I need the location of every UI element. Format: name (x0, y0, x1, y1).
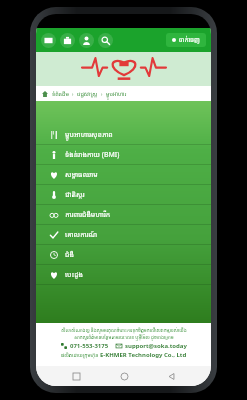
button[interactable]: Back (163, 368, 179, 384)
staticText: 071-553-3175 (70, 342, 109, 350)
button[interactable]: ទំងន់រាងកាយ (BMI) (36, 145, 211, 164)
staticText: គោលការណ៍ (65, 230, 98, 240)
staticText: សាកសួរព័ត៌មានបន្ថែមតាមរយៈលេខ ឬអ៊ីម៉ែល ដូ… (74, 334, 174, 340)
button[interactable]: សម្ពាធឈាម (36, 165, 211, 184)
staticText: ការពារជំងឺមហារីក (65, 210, 111, 220)
button[interactable]: ម្ហូបអាហារសុខភាព (36, 125, 211, 144)
staticText: › (69, 90, 77, 97)
staticText: សម្ពាធឈាម (65, 170, 98, 180)
staticText: ជំងឺ (65, 250, 74, 260)
staticText: E-KHMER Technology Co., Ltd (100, 351, 187, 359)
button[interactable]: Hospital (60, 33, 75, 48)
staticText: ទំងន់រាងកាយ (BMI) (65, 150, 120, 160)
staticText: បេះដូង (65, 270, 84, 280)
staticText: ម្ហូបអាហារសុខភាព (65, 130, 113, 140)
button[interactable]: ការពារជំងឺមហារីក (36, 205, 211, 224)
button[interactable]: ជាតិស្ករ (36, 185, 211, 204)
button[interactable]: Search (98, 33, 113, 48)
button[interactable]: គោលការណ៍ (36, 225, 211, 244)
staticText: វេជ្ជសាស្ត្រ (77, 90, 98, 97)
staticText: ម្ហូបអាហារ (106, 90, 127, 97)
staticText: សិលាសំណាងល្អ និងសូមអរគុណចំពោះការទុកចិត្ត… (61, 327, 187, 333)
button[interactable]: ចាក់ចេញ (166, 33, 206, 47)
staticText: support@soka.today (125, 342, 187, 350)
staticText: › (98, 90, 106, 97)
button[interactable]: Recents (68, 368, 84, 384)
staticText: ផលិតដោយក្រុមហ៊ុន (61, 352, 100, 359)
button[interactable]: News (41, 33, 56, 48)
staticText: ជាតិស្ករ (65, 190, 85, 200)
button[interactable]: ជំងឺ (36, 245, 211, 264)
button[interactable]: បេះដូង (36, 265, 211, 284)
staticText: ទំព័រដើម (52, 90, 69, 97)
button[interactable]: Home (116, 368, 132, 384)
staticText: ចាក់ចេញ (179, 36, 200, 44)
button[interactable]: Doctor (79, 33, 94, 48)
